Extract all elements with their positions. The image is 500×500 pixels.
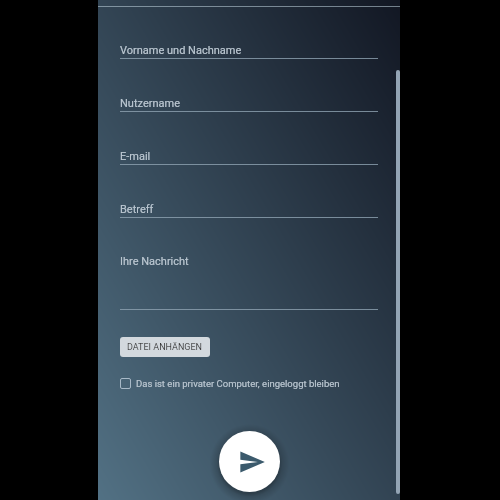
button[interactable]: Vorname und Nachname (120, 42, 378, 60)
button[interactable]: Ihre Nachricht (120, 253, 378, 311)
staticText: Vorname und Nachname (120, 44, 242, 57)
button[interactable]: Das ist ein privater Computer, eingelogg… (118, 374, 342, 393)
staticText: Betreff (120, 203, 154, 216)
button[interactable]: DATEI ANHÄNGEN (120, 337, 210, 357)
staticText: E-mail (120, 150, 151, 163)
staticText: Ihre Nachricht (120, 255, 189, 268)
button[interactable]: Betreff (120, 201, 378, 219)
button[interactable]: E-mail (120, 148, 378, 166)
staticText: Nutzername (120, 97, 180, 110)
staticText: DATEI ANHÄNGEN (127, 342, 203, 353)
button[interactable]: Senden (219, 431, 280, 492)
button[interactable]: Nutzername (120, 95, 378, 113)
staticText: Das ist ein privater Computer, eingelogg… (136, 378, 340, 389)
